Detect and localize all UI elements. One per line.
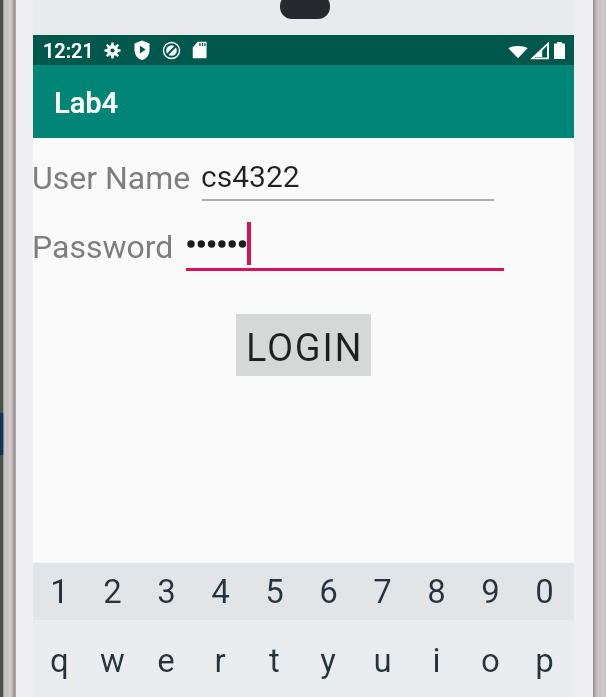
button[interactable]: w [86,641,139,697]
button[interactable]: 4 [193,563,247,620]
staticText: w [100,641,125,680]
staticText: 1 [50,572,69,611]
staticText: i [432,641,441,680]
staticText: 8 [427,572,446,611]
staticText: 5 [265,572,284,611]
staticText: 7 [373,572,392,611]
staticText: 9 [481,572,500,611]
staticText: t [269,641,280,680]
staticText: e [157,641,175,680]
button[interactable]: 5 [247,563,301,620]
staticText: 0 [535,572,554,611]
staticText: LOGIN [246,326,364,371]
button[interactable]: o [463,641,517,697]
staticText: Password [32,228,174,266]
button[interactable]: LOGIN [236,314,371,376]
button[interactable]: 1 [33,563,86,620]
staticText: 4 [211,572,230,611]
staticText: u [373,641,392,680]
button[interactable]: 6 [301,563,355,620]
button[interactable]: 2 [86,563,139,620]
button[interactable]: q [33,641,86,697]
staticText: 12:21 [43,39,94,62]
staticText: p [535,641,554,680]
button[interactable]: r [193,641,247,697]
button[interactable]: 3 [139,563,193,620]
staticText: 3 [157,572,176,611]
staticText: q [50,641,69,680]
button[interactable]: 8 [409,563,463,620]
staticText: Lab4 [54,86,119,120]
button[interactable]: t [247,641,301,697]
button[interactable]: u [355,641,409,697]
staticText: y [320,641,336,680]
staticText: cs4322 [201,159,300,194]
staticText: 2 [103,572,122,611]
button[interactable]: 0 [517,563,571,620]
staticText: r [214,641,226,680]
button[interactable]: e [139,641,193,697]
staticText: o [481,641,500,680]
button[interactable]: 7 [355,563,409,620]
button[interactable]: 9 [463,563,517,620]
button[interactable]: i [409,641,463,697]
staticText: 6 [319,572,338,611]
staticText: User Name [32,159,191,197]
button[interactable]: p [517,641,571,697]
button[interactable]: y [301,641,355,697]
